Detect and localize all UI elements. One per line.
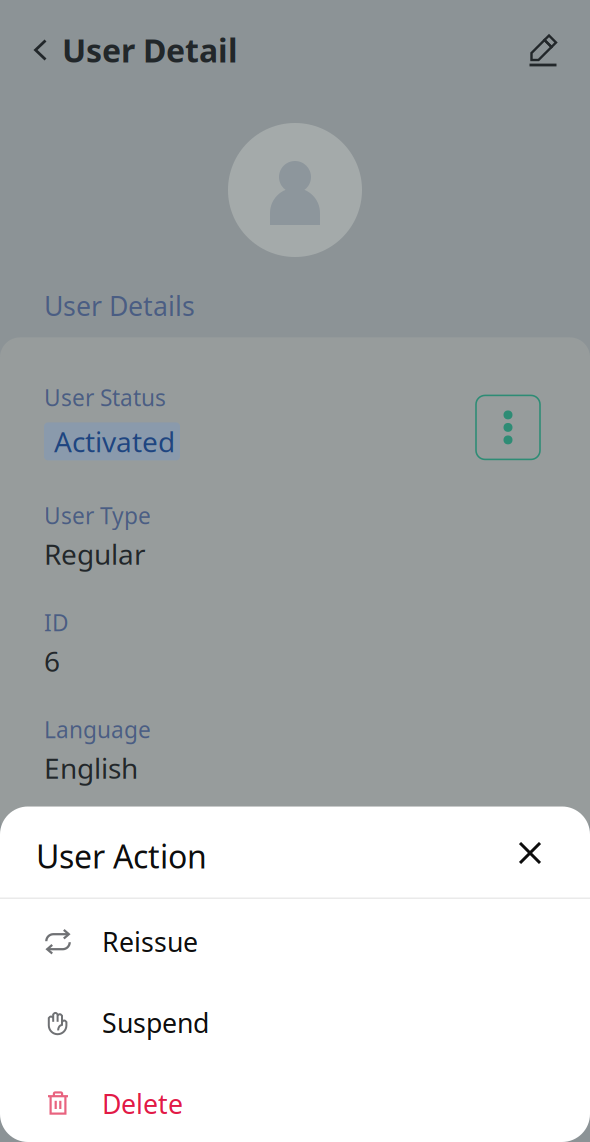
- staticText: User Action: [36, 835, 207, 877]
- staticText: Language: [44, 714, 151, 744]
- staticText: User Details: [44, 288, 195, 323]
- staticText: Suspend: [102, 1005, 209, 1040]
- staticText: Activated: [54, 423, 175, 460]
- staticText: Reissue: [102, 924, 198, 959]
- button[interactable]: Suspend: [0, 980, 590, 1061]
- button[interactable]: Close: [502, 825, 558, 881]
- staticText: User Type: [44, 500, 151, 530]
- staticText: Regular: [44, 535, 146, 572]
- staticText: User Detail: [62, 29, 238, 71]
- staticText: ID: [44, 607, 69, 637]
- button[interactable]: Reissue: [0, 899, 590, 980]
- button[interactable]: Delete: [0, 1061, 590, 1142]
- staticText: User Status: [44, 382, 166, 412]
- button[interactable]: User Detail: [0, 14, 252, 86]
- staticText: 6: [44, 642, 60, 679]
- staticText: Delete: [102, 1086, 183, 1121]
- staticText: English: [44, 749, 138, 786]
- button[interactable]: Edit: [513, 14, 577, 86]
- button[interactable]: More user actions: [476, 395, 540, 459]
